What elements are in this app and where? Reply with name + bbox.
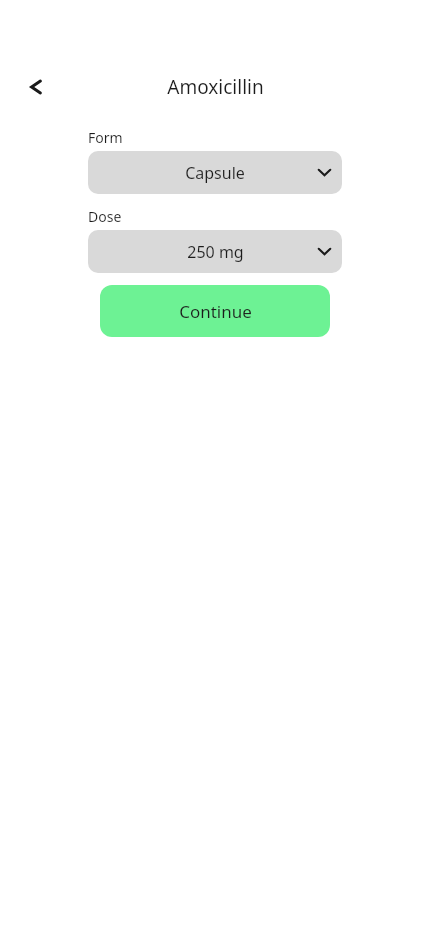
staticText: 250 mg — [187, 241, 244, 263]
staticText: Capsule — [185, 162, 245, 184]
staticText: Dose — [88, 207, 122, 226]
staticText: Form — [88, 128, 123, 147]
button[interactable]: Continue — [100, 285, 330, 337]
button[interactable]: Dose — [88, 230, 342, 273]
staticText: Continue — [179, 300, 252, 323]
button[interactable]: Back — [16, 67, 56, 107]
staticText: Amoxicillin — [167, 74, 264, 100]
button[interactable]: Form — [88, 151, 342, 194]
